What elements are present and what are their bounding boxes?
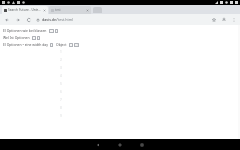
button[interactable]: Forward <box>14 16 21 23</box>
staticText: test.html <box>58 17 74 22</box>
staticText: 4 <box>60 74 62 78</box>
button[interactable]: Close tab <box>43 9 46 12</box>
button[interactable]: Close tab <box>86 9 89 12</box>
staticText: davis.de/ <box>42 17 58 22</box>
button[interactable]: Input field <box>69 43 73 47</box>
staticText: test <box>55 8 85 12</box>
staticText: Wel Ist Optionen <box>3 35 30 40</box>
staticText: Search Future - Untrained <box>8 8 42 12</box>
staticText: 5 <box>60 82 62 86</box>
staticText: El Optionen • eine width day <box>3 42 48 47</box>
button[interactable]: Search Future - Untrained <box>2 6 48 14</box>
staticText: 2 <box>60 58 62 62</box>
button[interactable]: Dropdown <box>74 43 79 47</box>
staticText: Object <box>56 42 67 47</box>
button[interactable]: Profile <box>220 16 227 23</box>
button[interactable]: test <box>49 6 91 14</box>
button[interactable]: Recent apps <box>131 139 153 150</box>
button[interactable]: Home <box>109 139 131 150</box>
staticText: El Optionen wie bei klassen <box>3 28 47 33</box>
staticText: 7 <box>60 98 62 102</box>
staticText: 6 <box>60 90 62 94</box>
button[interactable]: Input field <box>37 36 40 40</box>
staticText: 1 <box>60 50 62 54</box>
button[interactable]: davis.de/ <box>36 16 210 23</box>
button[interactable]: Back <box>3 16 10 23</box>
button[interactable]: Input field <box>50 43 53 47</box>
button[interactable]: Bookmark <box>210 16 217 23</box>
button[interactable]: More options <box>230 16 237 23</box>
staticText: 3 <box>60 66 62 70</box>
staticText: 8 <box>60 106 62 110</box>
staticText: 9 <box>60 114 62 118</box>
button[interactable]: Reload <box>25 16 32 23</box>
button[interactable]: Input field <box>32 36 36 40</box>
button[interactable]: Input field <box>49 29 54 33</box>
button[interactable]: Back <box>87 139 109 150</box>
button[interactable]: Input field <box>55 29 58 33</box>
